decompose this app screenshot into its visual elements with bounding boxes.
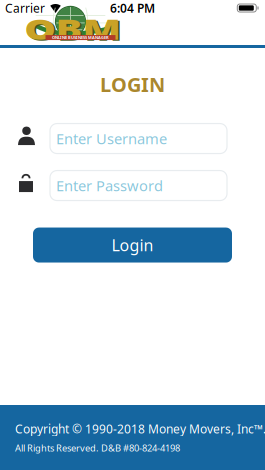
staticText: Carrier xyxy=(5,0,45,16)
button[interactable]: Enter Username xyxy=(50,124,227,154)
staticText: All Rights Reserved. D&B #80-824-4198 xyxy=(15,442,180,454)
button[interactable]: Login xyxy=(33,228,232,263)
staticText: OBM xyxy=(40,11,108,49)
staticText: Enter Username xyxy=(56,129,167,148)
staticText: LOGIN xyxy=(100,71,165,98)
staticText: 6:04 PM xyxy=(110,0,155,16)
staticText: Copyright © 1990-2018 Money Movers, Inc™… xyxy=(15,421,265,437)
staticText: ONLINE BUSINESS MANAGER xyxy=(52,35,109,40)
staticText: Enter Password xyxy=(56,176,163,195)
button[interactable]: Enter Password xyxy=(50,171,227,201)
staticText: OBM xyxy=(38,10,106,48)
staticText: Login xyxy=(111,234,153,256)
